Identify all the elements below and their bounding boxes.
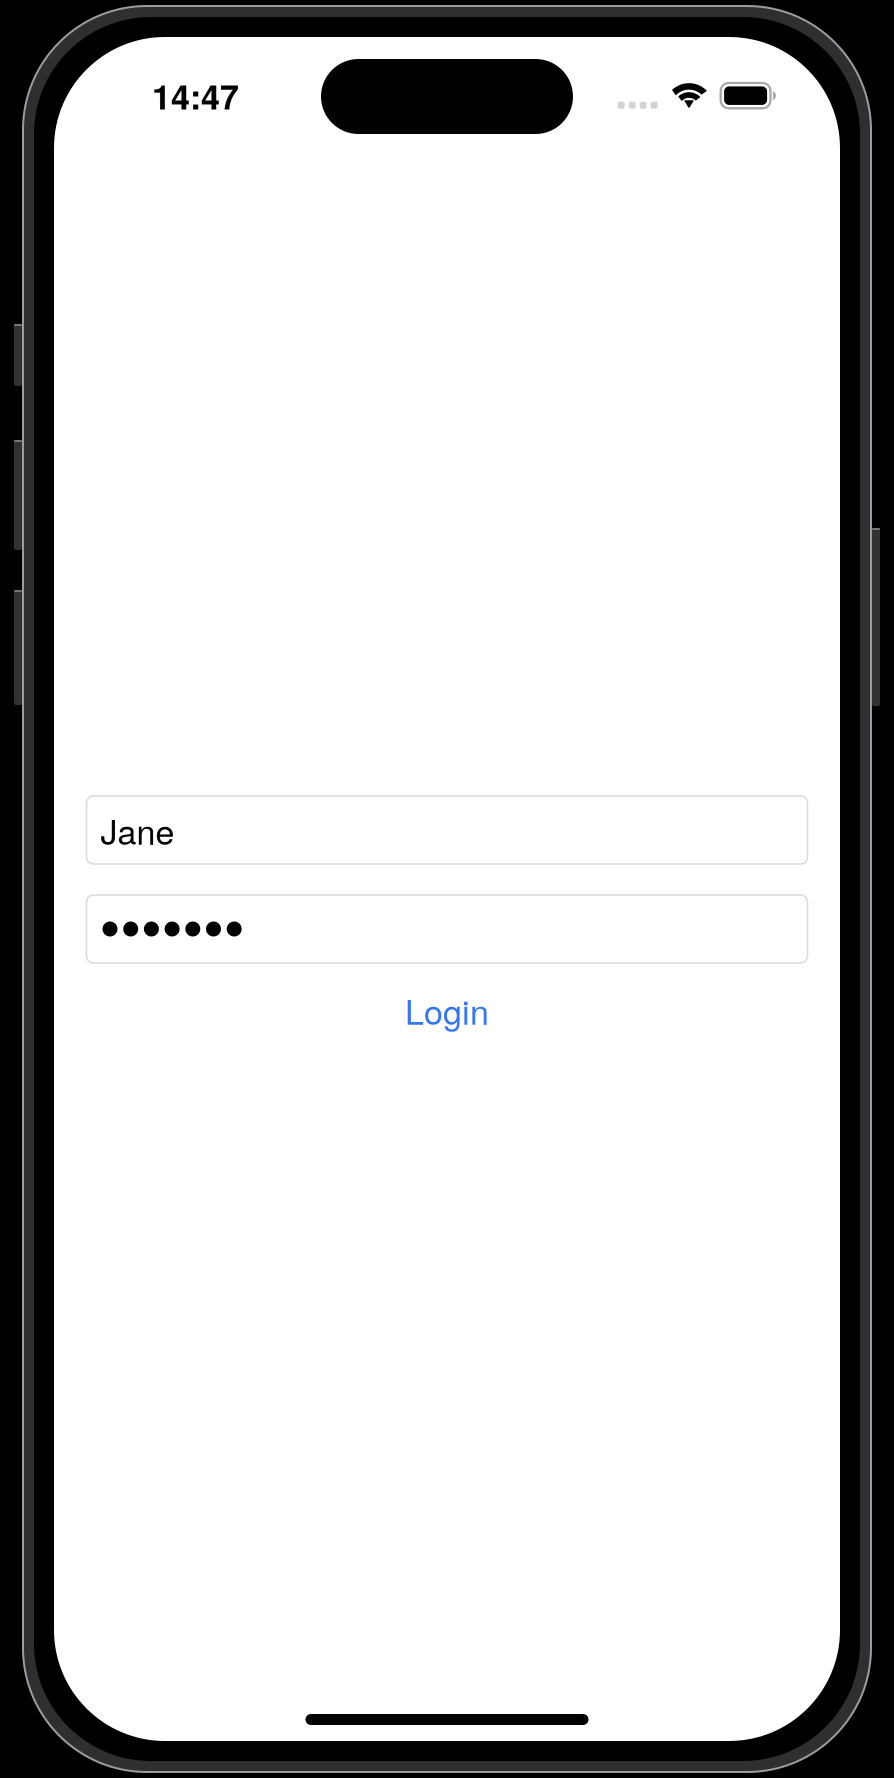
staticText: Login [405,986,489,1034]
staticText: Jane [100,806,174,854]
button[interactable]: Password [86,895,807,963]
button[interactable]: Login [86,983,807,1037]
staticText: 14:47 [152,71,239,120]
button[interactable]: Jane [86,796,807,864]
